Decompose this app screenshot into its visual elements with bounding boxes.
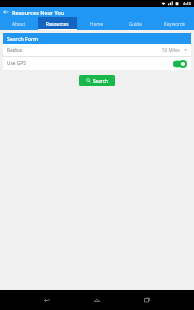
staticText: Search Form (7, 35, 39, 42)
staticText: Guide (129, 21, 142, 27)
button[interactable]: Back (31, 290, 63, 310)
button[interactable]: Search (79, 75, 115, 86)
staticText: Home (90, 21, 104, 27)
staticText: Keywords (164, 21, 185, 27)
staticText: About (12, 21, 26, 27)
button[interactable]: Guide (116, 17, 155, 30)
button[interactable]: About (0, 17, 38, 30)
button[interactable]: Keywords (155, 17, 194, 30)
button[interactable]: Use GPS (3, 57, 191, 70)
staticText: Use GPS (7, 60, 26, 67)
staticText: 4:40 (183, 1, 191, 6)
button[interactable]: Home (81, 290, 113, 310)
button[interactable]: Recent apps (131, 290, 163, 310)
staticText: Search (93, 78, 108, 84)
button[interactable]: Home (77, 17, 116, 30)
staticText: Resources Near You (12, 9, 65, 16)
staticText: Resources (46, 21, 69, 27)
button[interactable]: Resources (38, 17, 77, 30)
button[interactable]: Use GPS toggle (173, 60, 187, 68)
button[interactable]: Back (0, 7, 12, 17)
button[interactable]: Radius (3, 44, 191, 56)
staticText: Radius (7, 47, 23, 54)
staticText: 50 Miles (162, 47, 180, 53)
